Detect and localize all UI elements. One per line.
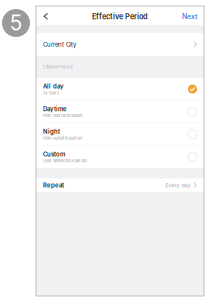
staticText: 5 — [10, 10, 22, 35]
staticText: Custom — [43, 151, 65, 158]
staticText: Effective Period — [92, 12, 148, 21]
staticText: All day — [43, 83, 64, 90]
staticText: From sunrise to sunset — [43, 113, 82, 118]
button[interactable]: Next — [176, 6, 204, 25]
staticText: Every day — [165, 182, 190, 188]
staticText: Daytime — [43, 105, 67, 113]
staticText: Current City — [43, 41, 76, 48]
staticText: Effective Period — [43, 64, 73, 70]
button[interactable]: Daytime — [36, 101, 204, 123]
button[interactable]: Custom — [36, 146, 204, 168]
button[interactable]: All day — [36, 78, 204, 100]
button[interactable]: Repeat — [36, 178, 204, 192]
staticText: Repeat — [43, 182, 64, 189]
staticText: 24 hours — [43, 90, 59, 95]
staticText: From sunset to sunrise — [43, 136, 82, 141]
button[interactable]: Back — [36, 6, 54, 25]
staticText: Night — [43, 128, 60, 135]
staticText: Next — [182, 12, 197, 21]
button[interactable]: Night — [36, 123, 204, 145]
button[interactable]: Current City — [36, 33, 204, 56]
staticText: User defined time period — [43, 158, 86, 163]
